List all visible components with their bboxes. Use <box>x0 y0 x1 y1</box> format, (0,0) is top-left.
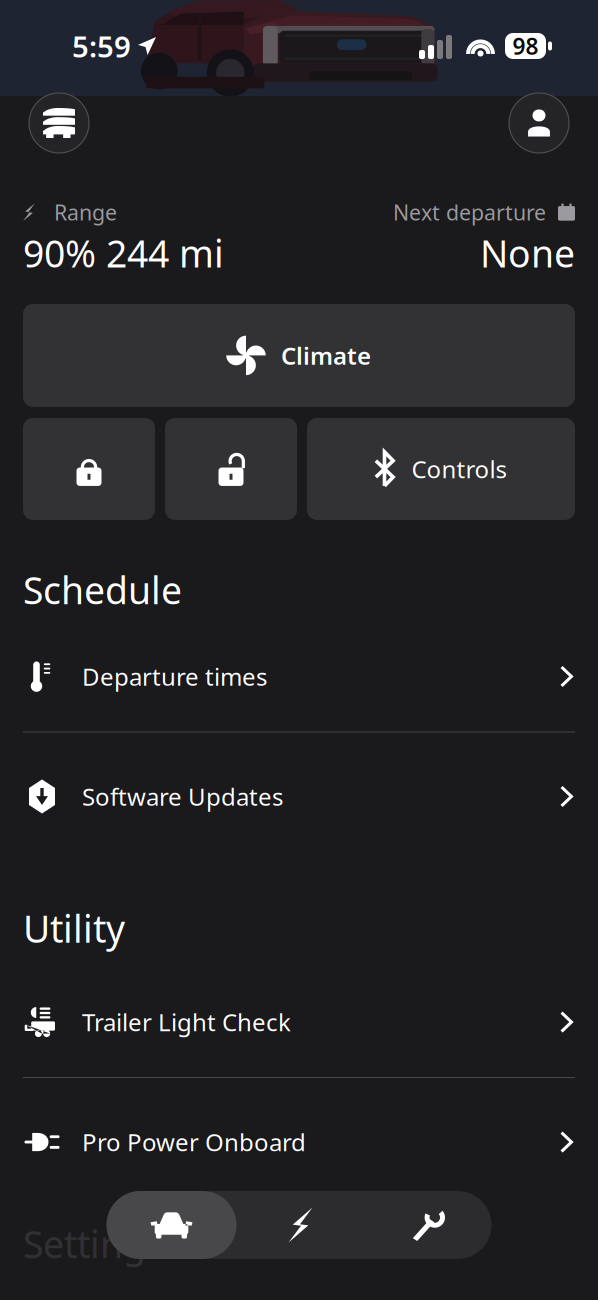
staticText: Settings <box>23 1219 164 1269</box>
staticText: 5:59 <box>72 26 131 65</box>
button[interactable]: Vehicle <box>106 1191 236 1259</box>
staticText: Next departure <box>393 198 546 226</box>
button[interactable]: Software Updates <box>0 745 598 847</box>
staticText: Departure times <box>82 660 267 692</box>
staticText: Trailer Light Check <box>82 1006 291 1038</box>
button[interactable]: Unlock <box>165 418 297 520</box>
staticText: 90% 244 mi <box>23 228 224 278</box>
button[interactable]: Climate <box>23 304 575 407</box>
staticText: Climate <box>281 339 371 371</box>
staticText: Utility <box>23 903 125 953</box>
staticText: Controls <box>411 453 506 485</box>
staticText: Range <box>54 198 117 226</box>
button[interactable]: Service <box>364 1191 491 1259</box>
button[interactable]: Switch vehicle <box>29 93 89 153</box>
button[interactable]: Lock <box>23 418 155 520</box>
staticText: Schedule <box>23 565 182 614</box>
staticText: 98 <box>512 31 538 61</box>
button[interactable]: Controls <box>307 418 575 520</box>
staticText: Software Updates <box>82 780 283 812</box>
button[interactable]: Departure times <box>0 625 598 727</box>
button[interactable]: Pro Power Onboard <box>0 1091 598 1193</box>
staticText: None <box>480 228 575 278</box>
button[interactable]: Trailer Light Check <box>0 971 598 1073</box>
button[interactable]: Account <box>509 93 569 153</box>
staticText: Pro Power Onboard <box>82 1126 306 1158</box>
button[interactable]: Charging <box>236 1191 364 1259</box>
